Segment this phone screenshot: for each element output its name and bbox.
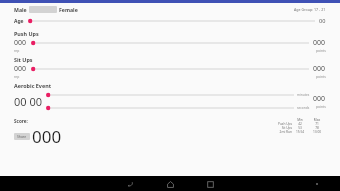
- staticText: 000: [313, 38, 326, 48]
- staticText: 00 00: [14, 94, 43, 109]
- staticText: Age Group: 17 - 21: [294, 7, 326, 12]
- button[interactable]: Home: [163, 177, 177, 191]
- staticText: points: [316, 48, 326, 53]
- staticText: 71: [308, 122, 326, 126]
- button[interactable]: Slider: [31, 64, 309, 74]
- staticText: 000: [14, 64, 27, 74]
- button[interactable]: Back: [123, 177, 137, 191]
- button[interactable]: Slider: [31, 38, 309, 48]
- staticText: minutes: [297, 93, 310, 97]
- staticText: Sit Ups: [266, 126, 292, 130]
- staticText: 78: [308, 126, 326, 130]
- staticText: 00: [319, 17, 326, 25]
- staticText: 53: [292, 126, 308, 130]
- staticText: 2mi Run: [266, 130, 292, 134]
- staticText: points: [316, 74, 326, 79]
- staticText: Male: [14, 6, 27, 13]
- button[interactable]: Slider: [46, 103, 294, 113]
- staticText: Age: [14, 18, 24, 25]
- button[interactable]: Slider: [46, 90, 294, 100]
- staticText: Push Ups: [14, 30, 39, 37]
- staticText: points: [316, 104, 326, 109]
- staticText: Share: [17, 134, 27, 139]
- staticText: 000: [313, 64, 326, 74]
- button[interactable]: Share: [14, 133, 30, 140]
- staticText: 000: [32, 125, 62, 148]
- button[interactable]: Recent apps: [203, 177, 217, 191]
- staticText: Sit Ups: [14, 56, 33, 63]
- staticText: rep: [14, 74, 20, 79]
- staticText: rep: [14, 48, 20, 53]
- staticText: 42: [292, 122, 308, 126]
- staticText: 000: [14, 38, 27, 48]
- staticText: Min: [292, 118, 308, 122]
- staticText: seconds: [297, 106, 310, 110]
- staticText: Aerobic Event: [14, 82, 51, 89]
- button[interactable]: Slider: [28, 16, 315, 26]
- staticText: 000: [313, 94, 326, 104]
- staticText: 13:00: [308, 130, 326, 134]
- staticText: Push Ups: [266, 122, 292, 126]
- staticText: 15:54: [292, 130, 308, 134]
- staticText: Max: [308, 118, 326, 122]
- staticText: Score:: [14, 118, 28, 124]
- staticText: Female: [59, 6, 78, 13]
